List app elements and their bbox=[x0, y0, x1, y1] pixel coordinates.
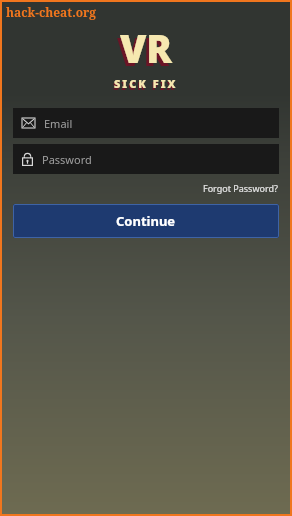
staticText: Password bbox=[42, 152, 92, 167]
button[interactable]: Continue bbox=[13, 204, 279, 238]
button[interactable]: Password bbox=[13, 144, 279, 174]
staticText: VR bbox=[117, 25, 170, 77]
staticText: Email bbox=[44, 116, 73, 131]
staticText: Forgot Password? bbox=[203, 182, 278, 194]
button[interactable]: Email bbox=[13, 108, 279, 138]
staticText: SICK FIX bbox=[114, 76, 178, 91]
button[interactable]: Forgot Password? bbox=[201, 181, 280, 195]
staticText: VR bbox=[120, 22, 173, 74]
staticText: hack-cheat.org bbox=[6, 4, 97, 20]
staticText: SICK FIX bbox=[113, 78, 177, 93]
staticText: Continue bbox=[116, 212, 176, 230]
